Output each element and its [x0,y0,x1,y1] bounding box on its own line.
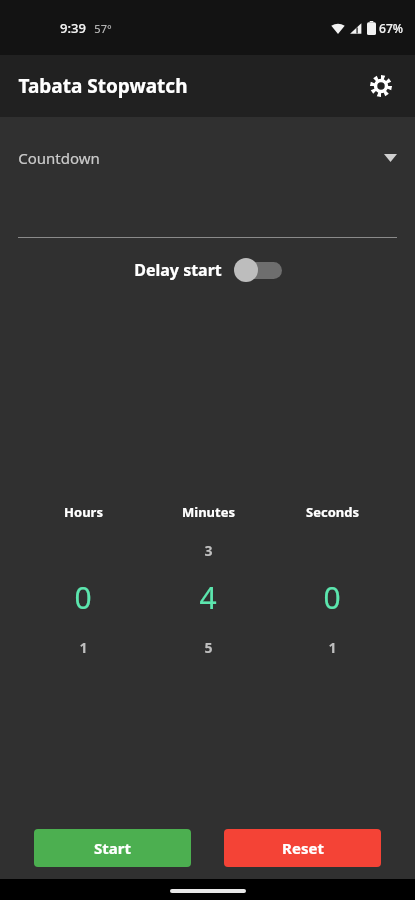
staticText: 57° [94,21,112,36]
button[interactable]: Minutes [165,503,251,658]
staticText: 3 [204,541,213,560]
staticText: 1 [79,638,88,657]
staticText: Minutes [182,503,235,521]
staticText: Hours [64,503,103,521]
staticText: 1 [328,638,337,657]
staticText: 4 [199,577,217,618]
button[interactable]: Settings [359,64,403,108]
button[interactable]: Start [34,829,191,867]
staticText: 67% [379,20,403,36]
staticText: Reset [282,838,324,858]
button[interactable]: Delay start toggle [234,257,282,283]
staticText: 9:39 [60,19,86,37]
button[interactable]: Reset [224,829,381,867]
staticText: Tabata Stopwatch [18,73,188,99]
button[interactable]: Countdown [18,137,397,179]
staticText: 5 [204,638,213,657]
button[interactable]: Delay start [130,253,286,287]
staticText: Delay start [134,259,222,281]
button[interactable]: Seconds [289,503,375,658]
staticText: Countdown [18,148,100,168]
staticText: 0 [323,577,341,618]
staticText: Start [94,838,131,858]
staticText: 0 [74,577,92,618]
button[interactable]: Hours [40,503,126,658]
staticText: Seconds [306,503,359,521]
